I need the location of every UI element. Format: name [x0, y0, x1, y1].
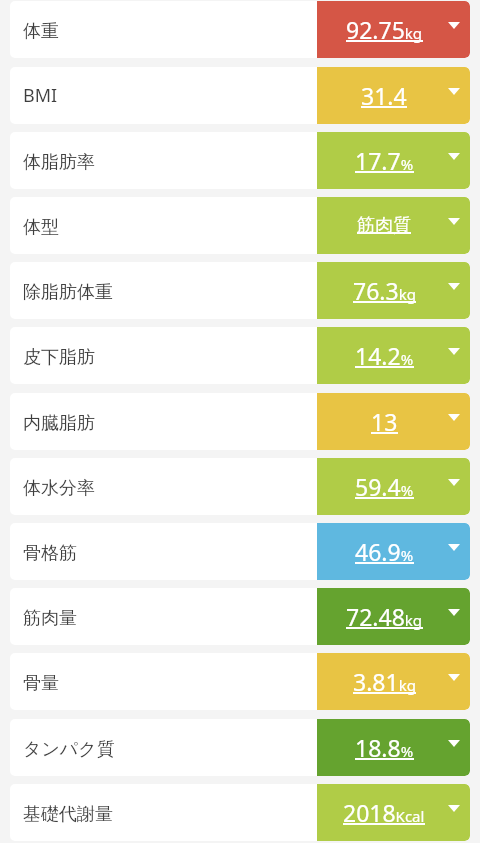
staticText: 76.3kg [353, 275, 416, 306]
staticText: 46.9% [355, 536, 414, 567]
staticText: 皮下脂肪 [23, 346, 95, 369]
other: Expand [448, 218, 460, 225]
button[interactable]: 骨量 3.81kg [317, 653, 470, 710]
button[interactable]: 体型 [10, 197, 470, 254]
staticText: 3.81kg [353, 666, 416, 697]
staticText: 59.4% [355, 471, 414, 502]
other: Expand [448, 544, 460, 551]
button[interactable]: 骨格筋 [10, 523, 470, 580]
staticText: 72.48kg [346, 601, 423, 632]
other: Expand [448, 414, 460, 421]
other: Expand [448, 609, 460, 616]
staticText: 筋肉量 [23, 607, 77, 630]
staticText: 13 [371, 406, 398, 437]
other: Expand [448, 283, 460, 290]
button[interactable]: 除脂肪体重 [10, 262, 470, 319]
staticText: タンパク質 [23, 738, 115, 761]
button[interactable]: 体脂肪率 17.7% [317, 132, 470, 189]
button[interactable]: 体重 92.75kg [317, 1, 470, 58]
staticText: 筋肉質 [357, 214, 411, 237]
button[interactable]: 筋肉量 72.48kg [317, 588, 470, 645]
button[interactable]: 内臓脂肪 [10, 393, 470, 450]
staticText: 体脂肪率 [23, 151, 95, 174]
staticText: 除脂肪体重 [23, 281, 113, 304]
button[interactable]: タンパク質 [10, 719, 470, 776]
staticText: 内臓脂肪 [23, 412, 95, 435]
staticText: BMI [23, 83, 58, 108]
button[interactable]: 骨格筋 46.9% [317, 523, 470, 580]
button[interactable]: 内臓脂肪 13 [317, 393, 470, 450]
staticText: 18.8% [355, 732, 414, 763]
button[interactable]: 体水分率 59.4% [317, 458, 470, 515]
staticText: 31.4 [361, 80, 407, 111]
button[interactable]: 体水分率 [10, 458, 470, 515]
other: Expand [448, 479, 460, 486]
staticText: 92.75kg [346, 14, 423, 45]
button[interactable]: 除脂肪体重 76.3kg [317, 262, 470, 319]
staticText: 体重 [23, 20, 59, 43]
staticText: 体水分率 [23, 477, 95, 500]
other: Expand [448, 674, 460, 681]
button[interactable]: 筋肉量 [10, 588, 470, 645]
button[interactable]: 体重 [10, 1, 470, 58]
other: Expand [448, 740, 460, 747]
button[interactable]: 骨量 [10, 653, 470, 710]
other: Expand [448, 348, 460, 355]
button[interactable]: 体脂肪率 [10, 132, 470, 189]
button[interactable]: タンパク質 18.8% [317, 719, 470, 776]
other: Expand [448, 88, 460, 95]
button[interactable]: 基礎代謝量 2018Kcal [317, 784, 470, 841]
staticText: 骨量 [23, 672, 59, 695]
button[interactable]: BMI 31.4 [317, 67, 470, 124]
other: Expand [448, 22, 460, 29]
staticText: 骨格筋 [23, 542, 77, 565]
button[interactable]: 基礎代謝量 [10, 784, 470, 841]
staticText: 2018Kcal [343, 797, 425, 828]
button[interactable]: 皮下脂肪 14.2% [317, 327, 470, 384]
staticText: 体型 [23, 216, 59, 239]
button[interactable]: 体型 筋肉質 [317, 197, 470, 254]
staticText: 基礎代謝量 [23, 803, 113, 826]
button[interactable]: 皮下脂肪 [10, 327, 470, 384]
staticText: 17.7% [355, 145, 414, 176]
staticText: 14.2% [355, 340, 414, 371]
other: Expand [448, 805, 460, 812]
other: Expand [448, 153, 460, 160]
button[interactable]: BMI [10, 67, 470, 124]
